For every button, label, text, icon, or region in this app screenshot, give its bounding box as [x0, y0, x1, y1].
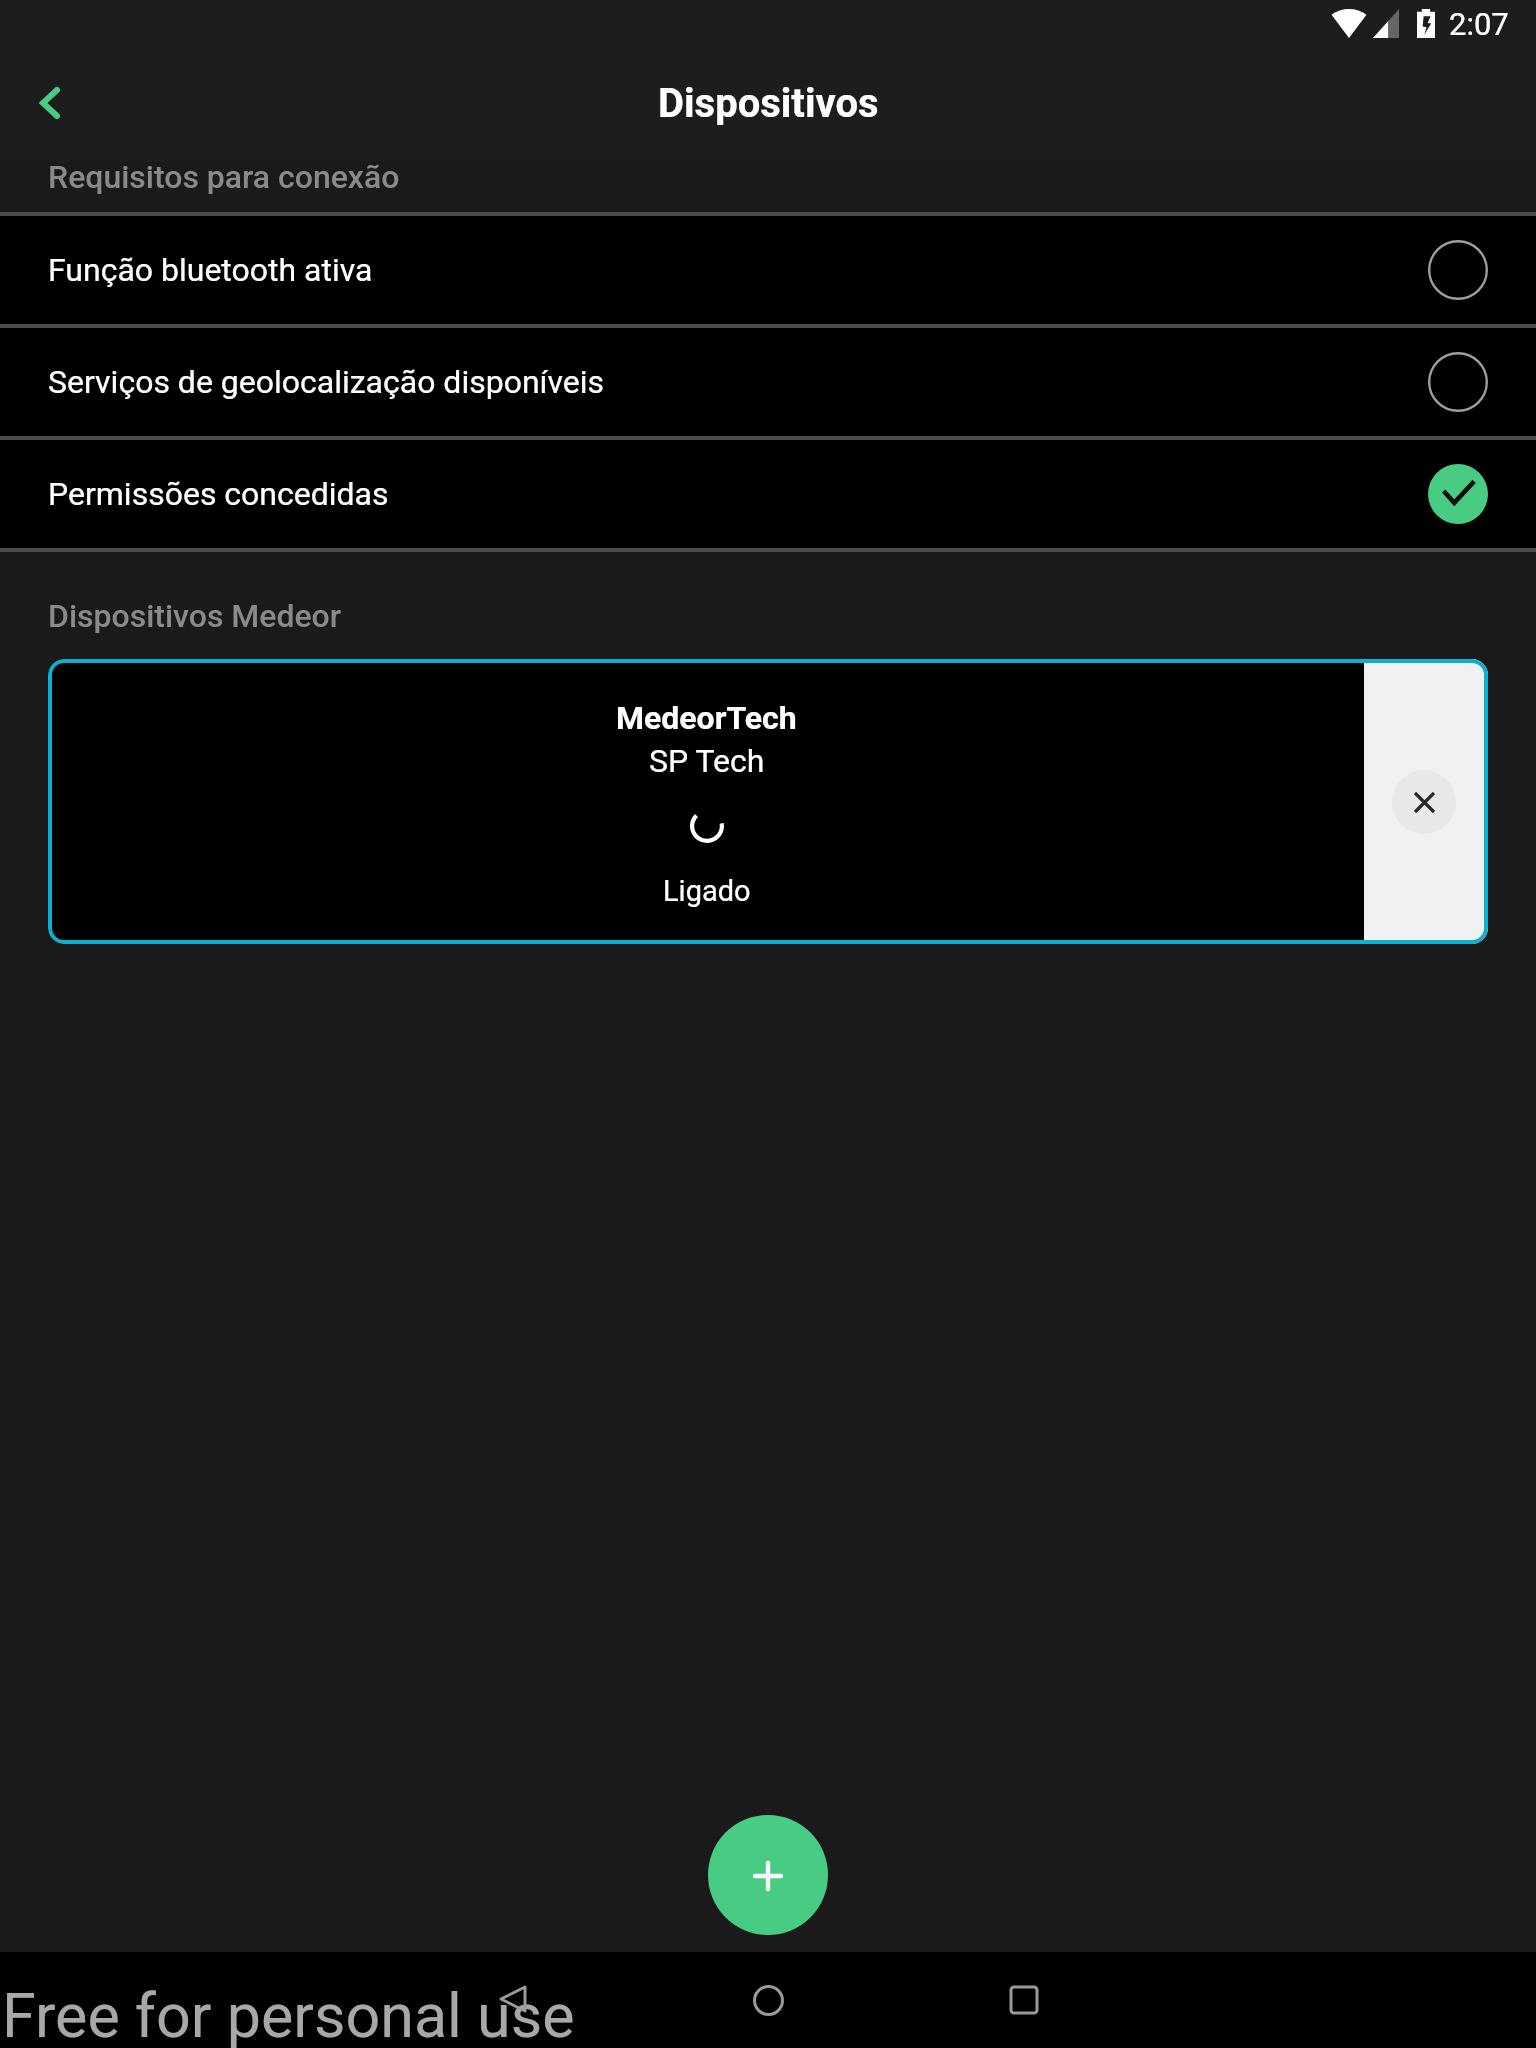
button[interactable]: Voltar [473, 1959, 553, 2039]
staticText: SP Tech [649, 742, 765, 780]
button[interactable]: MedeorTech [48, 659, 1488, 944]
staticText: MedeorTech [616, 699, 797, 737]
staticText: Dispositivos Medeor [48, 597, 342, 635]
staticText: Free for personal use [2, 1980, 575, 2048]
staticText: Função bluetooth ativa [48, 251, 1428, 289]
staticText: Permissões concedidas [48, 475, 1428, 513]
button[interactable]: Recentes [984, 1960, 1064, 2040]
button[interactable]: Permissões concedidas [0, 440, 1536, 548]
staticText: Requisitos para conexão [48, 158, 400, 196]
staticText: Serviços de geolocalização disponíveis [48, 363, 1428, 401]
button[interactable]: Serviços de geolocalização disponíveis [0, 328, 1536, 436]
staticText: 2:07 [1449, 6, 1509, 42]
button[interactable]: Início [728, 1960, 808, 2040]
button[interactable]: Remover dispositivo [1364, 659, 1488, 944]
button[interactable]: Adicionar dispositivo [708, 1815, 828, 1935]
staticText: Ligado [663, 874, 751, 908]
staticText: Dispositivos [658, 80, 879, 127]
button[interactable]: Voltar [0, 53, 100, 153]
button[interactable]: Função bluetooth ativa [0, 216, 1536, 324]
